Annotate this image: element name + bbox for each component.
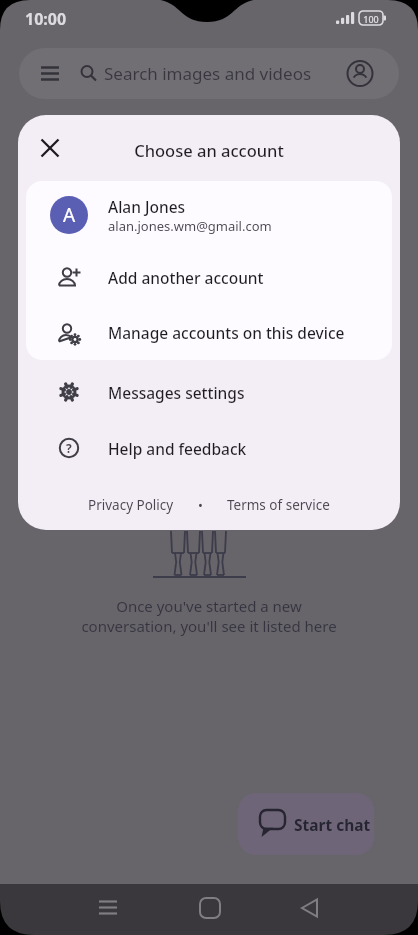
button[interactable]: Add another account <box>26 249 392 305</box>
staticText: Messages settings <box>108 382 245 403</box>
staticText: Start chat <box>294 814 371 835</box>
staticText: Manage accounts on this device <box>108 322 345 343</box>
staticText: 10:00 <box>25 8 67 30</box>
staticText: Once you've started a new conversation, … <box>0 596 418 636</box>
staticText: A <box>63 202 76 228</box>
button[interactable]: Start chat <box>238 793 374 855</box>
button[interactable]: Search images and videos <box>19 48 399 99</box>
button[interactable]: Messages settings <box>18 364 400 420</box>
staticText: 100 <box>361 13 381 25</box>
button[interactable]: Manage accounts on this device <box>26 305 392 360</box>
button[interactable]: A <box>26 181 392 249</box>
staticText: Choose an account <box>18 139 400 161</box>
staticText: • <box>198 496 203 514</box>
button[interactable]: ? <box>18 420 400 476</box>
staticText: alan.jones.wm@gmail.com <box>108 217 272 235</box>
button[interactable]: Terms of service <box>227 496 330 514</box>
staticText: Help and feedback <box>108 438 247 459</box>
button[interactable] <box>40 138 60 158</box>
staticText: Search images and videos <box>104 62 312 85</box>
button[interactable]: Privacy Policy <box>88 496 174 514</box>
staticText: Add another account <box>108 267 264 288</box>
staticText: ? <box>66 440 72 456</box>
staticText: Alan Jones <box>108 196 186 217</box>
